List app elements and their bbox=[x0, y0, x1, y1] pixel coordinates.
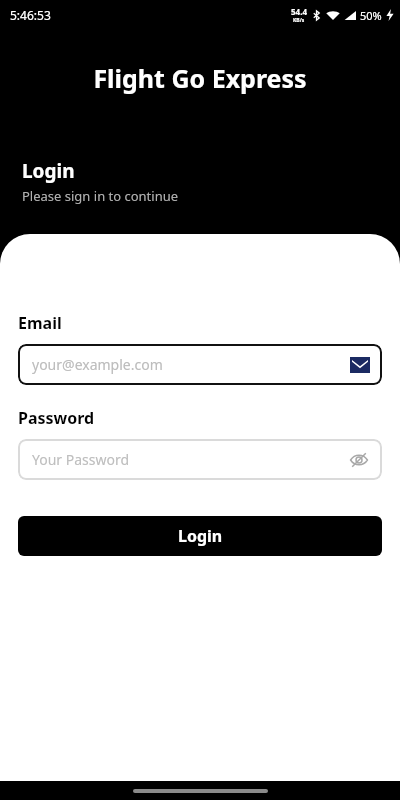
staticText: Login bbox=[178, 525, 223, 547]
staticText: 50% bbox=[360, 8, 382, 23]
staticText: Flight Go Express bbox=[0, 61, 400, 95]
staticText: Your Password bbox=[32, 450, 348, 469]
staticText: 54.4 bbox=[291, 6, 307, 17]
button[interactable]: Login bbox=[18, 516, 382, 556]
staticText: Password bbox=[18, 407, 95, 429]
staticText: your@example.com bbox=[32, 355, 350, 374]
button[interactable]: Show password bbox=[348, 449, 370, 471]
button[interactable]: your@example.com bbox=[18, 344, 382, 385]
staticText: 5:46:53 bbox=[10, 7, 51, 23]
staticText: KB/s bbox=[293, 17, 305, 24]
staticText: Email bbox=[18, 312, 62, 334]
button[interactable]: Email bbox=[350, 357, 370, 373]
staticText: Please sign in to continue bbox=[22, 187, 179, 205]
staticText: Login bbox=[22, 158, 75, 184]
button[interactable]: Your Password bbox=[18, 439, 382, 480]
